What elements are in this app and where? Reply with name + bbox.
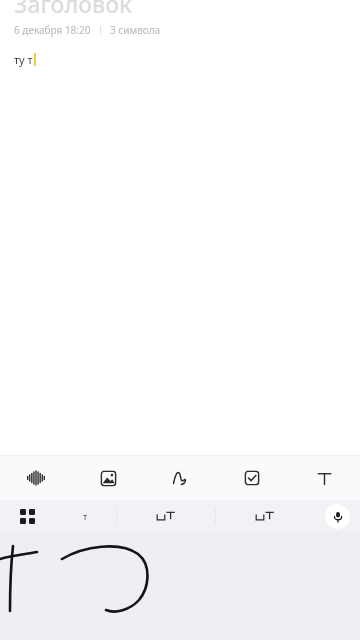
button[interactable]: Handwriting [144, 456, 216, 500]
staticText: ту т [14, 52, 33, 67]
button[interactable]: Text mode [54, 500, 116, 532]
button[interactable]: Insert image [72, 456, 144, 500]
staticText: 6 декабря 18:20 [14, 23, 91, 37]
button[interactable]: Text formatting [288, 456, 360, 500]
staticText: т [83, 510, 88, 522]
button[interactable]: Insert space after text [216, 500, 314, 532]
staticText: 3 символа [110, 23, 161, 37]
button[interactable]: Voice input [314, 500, 360, 532]
button[interactable]: Keyboard layouts [0, 500, 54, 532]
button[interactable]: Handwriting input area [0, 532, 360, 640]
button[interactable]: Checklist [216, 456, 288, 500]
button[interactable]: Insert space before text [117, 500, 215, 532]
button[interactable]: Voice recording [0, 456, 72, 500]
staticText: Заголовок [14, 0, 132, 19]
